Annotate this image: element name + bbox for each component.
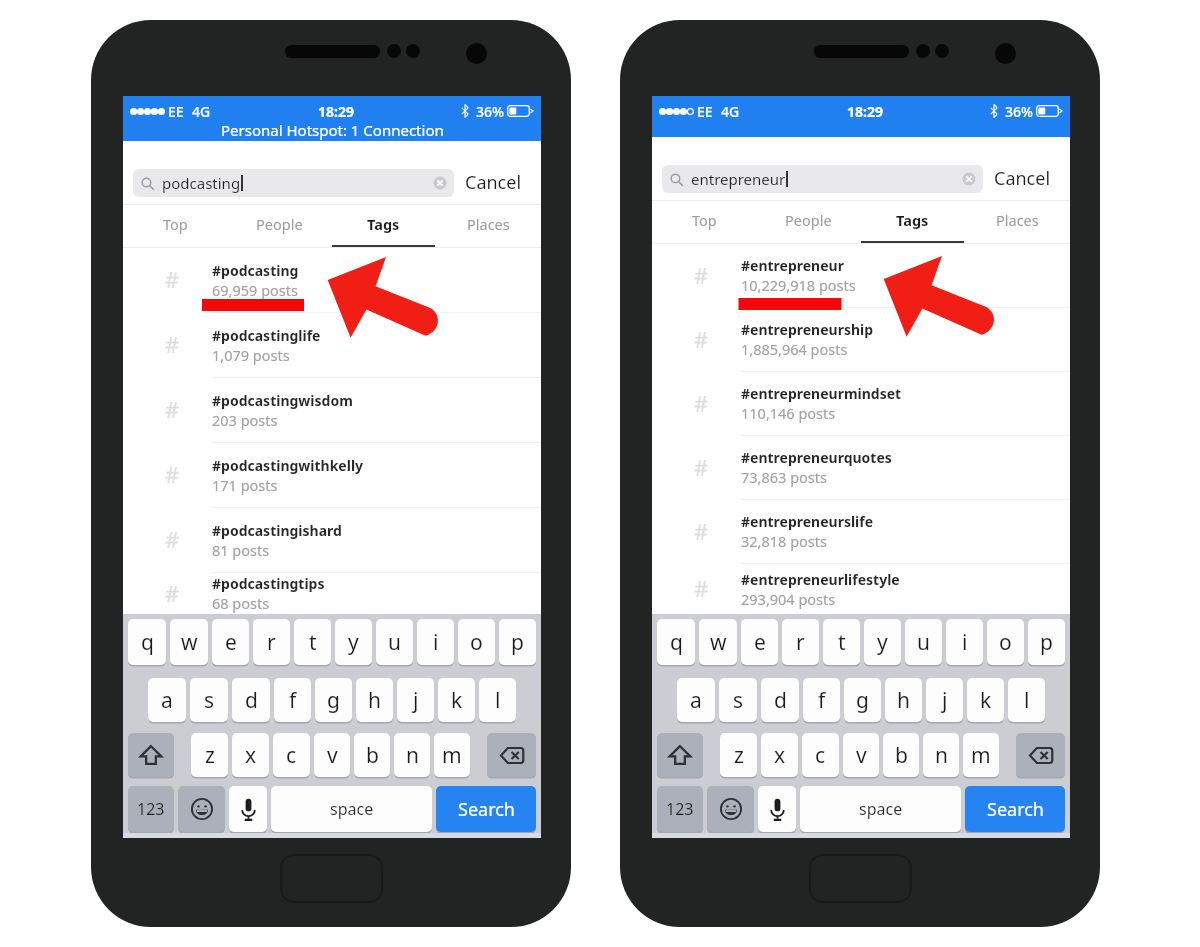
- staticText: #podcastingishard: [212, 521, 342, 540]
- button[interactable]: m: [963, 733, 999, 777]
- button[interactable]: x: [761, 733, 798, 777]
- button[interactable]: u: [376, 619, 413, 665]
- button[interactable]: v: [314, 733, 350, 777]
- button[interactable]: Backspace: [487, 733, 536, 777]
- button[interactable]: j: [926, 678, 963, 722]
- button[interactable]: #: [652, 564, 1070, 614]
- button[interactable]: entrepreneur: [662, 165, 983, 193]
- button[interactable]: p: [499, 619, 536, 665]
- button[interactable]: Search: [436, 786, 536, 832]
- button[interactable]: Top: [652, 201, 756, 243]
- button[interactable]: Cancel: [454, 165, 533, 200]
- button[interactable]: 123: [657, 786, 703, 832]
- button[interactable]: People: [227, 205, 331, 247]
- button[interactable]: space: [271, 786, 432, 832]
- button[interactable]: t: [294, 619, 331, 665]
- button[interactable]: d: [232, 678, 270, 722]
- button[interactable]: 123: [128, 786, 174, 832]
- button[interactable]: l: [479, 678, 516, 722]
- button[interactable]: Tags: [860, 201, 965, 243]
- staticText: #entrepreneurmindset: [741, 384, 902, 403]
- button[interactable]: Cancel: [983, 161, 1062, 196]
- button[interactable]: #: [652, 372, 1070, 435]
- button[interactable]: a: [148, 678, 186, 722]
- button[interactable]: z: [720, 733, 757, 777]
- button[interactable]: e: [741, 619, 778, 665]
- button[interactable]: g: [844, 678, 881, 722]
- staticText: podcasting: [162, 173, 241, 193]
- staticText: People: [256, 214, 303, 234]
- button[interactable]: r: [782, 619, 819, 665]
- button[interactable]: k: [438, 678, 475, 722]
- staticText: #: [165, 578, 180, 608]
- button[interactable]: e: [212, 619, 249, 665]
- button[interactable]: y: [864, 619, 901, 665]
- button[interactable]: b: [354, 733, 390, 777]
- button[interactable]: Places: [965, 201, 1070, 243]
- button[interactable]: Dictate: [758, 786, 796, 832]
- button[interactable]: Shift: [128, 733, 174, 777]
- button[interactable]: n: [923, 733, 959, 777]
- button[interactable]: r: [253, 619, 290, 665]
- button[interactable]: f: [803, 678, 840, 722]
- button[interactable]: #: [652, 244, 1070, 307]
- button[interactable]: c: [273, 733, 310, 777]
- button[interactable]: w: [170, 619, 208, 665]
- button[interactable]: t: [823, 619, 860, 665]
- button[interactable]: #: [123, 573, 541, 614]
- button[interactable]: Places: [436, 205, 541, 247]
- button[interactable]: k: [967, 678, 1004, 722]
- button[interactable]: q: [128, 619, 166, 665]
- button[interactable]: #: [123, 508, 541, 572]
- button[interactable]: y: [335, 619, 372, 665]
- button[interactable]: l: [1008, 678, 1045, 722]
- button[interactable]: o: [987, 619, 1024, 665]
- button[interactable]: #: [123, 313, 541, 377]
- button[interactable]: Emoji: [707, 786, 754, 832]
- button[interactable]: Top: [123, 205, 227, 247]
- button[interactable]: #: [123, 443, 541, 507]
- button[interactable]: #: [652, 436, 1070, 499]
- button[interactable]: f: [274, 678, 311, 722]
- button[interactable]: space: [800, 786, 961, 832]
- button[interactable]: Dictate: [229, 786, 267, 832]
- button[interactable]: #: [652, 500, 1070, 563]
- button[interactable]: #: [652, 308, 1070, 371]
- button[interactable]: m: [434, 733, 470, 777]
- button[interactable]: #: [123, 248, 541, 312]
- button[interactable]: Search: [965, 786, 1065, 832]
- button[interactable]: w: [699, 619, 737, 665]
- button[interactable]: i: [417, 619, 454, 665]
- button[interactable]: u: [905, 619, 942, 665]
- button[interactable]: i: [946, 619, 983, 665]
- button[interactable]: z: [191, 733, 228, 777]
- staticText: EE: [168, 102, 184, 120]
- button[interactable]: s: [190, 678, 228, 722]
- button[interactable]: g: [315, 678, 352, 722]
- button[interactable]: podcasting: [133, 169, 454, 197]
- button[interactable]: o: [458, 619, 495, 665]
- button[interactable]: h: [885, 678, 922, 722]
- button[interactable]: a: [677, 678, 715, 722]
- button[interactable]: People: [756, 201, 860, 243]
- button[interactable]: p: [1028, 619, 1065, 665]
- button[interactable]: s: [719, 678, 757, 722]
- button[interactable]: Shift: [657, 733, 703, 777]
- button[interactable]: n: [394, 733, 430, 777]
- button[interactable]: Tags: [331, 205, 436, 247]
- button[interactable]: #: [123, 378, 541, 442]
- button[interactable]: b: [883, 733, 919, 777]
- button[interactable]: j: [397, 678, 434, 722]
- button[interactable]: q: [657, 619, 695, 665]
- button[interactable]: d: [761, 678, 799, 722]
- button[interactable]: x: [232, 733, 269, 777]
- button[interactable]: h: [356, 678, 393, 722]
- button[interactable]: c: [802, 733, 839, 777]
- staticText: p: [1040, 628, 1053, 657]
- button[interactable]: v: [843, 733, 879, 777]
- button[interactable]: Emoji: [178, 786, 225, 832]
- button[interactable]: Backspace: [1016, 733, 1065, 777]
- staticText: #entrepreneur: [741, 256, 844, 275]
